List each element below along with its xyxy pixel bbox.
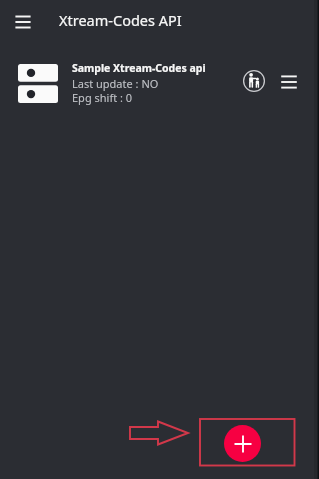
button[interactable]: Parental control [238,65,270,97]
button[interactable]: Add [224,425,261,462]
button[interactable]: Sample Xtream-Codes api [0,48,319,110]
staticText: Xtream-Codes API [59,10,182,30]
button[interactable]: Navigation menu [7,6,38,37]
button[interactable]: Options [273,66,305,98]
staticText: Last update : NO [72,76,159,91]
staticText: Sample Xtream-Codes api [72,61,206,75]
staticText: Epg shift : 0 [72,90,133,105]
